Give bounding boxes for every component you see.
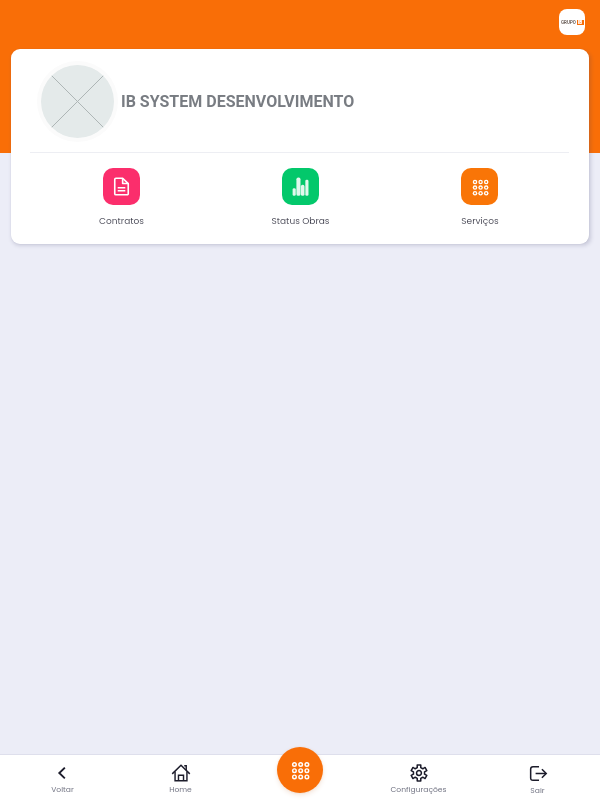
staticText: Configurações: [390, 784, 447, 795]
button[interactable]: Home: [121, 755, 240, 800]
staticText: GRUPO: [561, 20, 576, 25]
button[interactable]: Sair: [478, 755, 597, 800]
button[interactable]: Contratos: [32, 153, 211, 243]
button[interactable]: Apps menu: [277, 747, 323, 793]
staticText: IB: [578, 20, 583, 25]
button[interactable]: Grupo IB logo: [559, 9, 585, 35]
staticText: Contratos: [99, 215, 144, 228]
staticText: Home: [169, 784, 192, 795]
staticText: Sair: [530, 785, 545, 796]
staticText: IB SYSTEM DESENVOLVIMENTO: [121, 92, 355, 111]
button[interactable]: Configurações: [359, 755, 478, 800]
button[interactable]: Serviços: [390, 153, 569, 243]
staticText: Status Obras: [271, 215, 330, 228]
staticText: Serviços: [461, 215, 499, 228]
button[interactable]: Status Obras: [211, 153, 390, 243]
button[interactable]: Voltar: [3, 755, 121, 800]
button[interactable]: IB SYSTEM DESENVOLVIMENTO: [37, 61, 355, 142]
staticText: Voltar: [51, 784, 74, 795]
